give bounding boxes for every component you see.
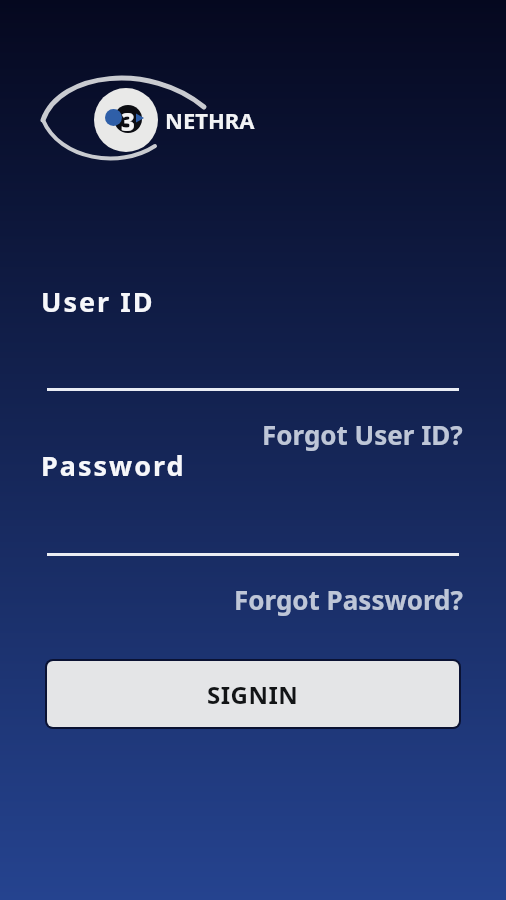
button[interactable]: Forgot User ID? [262,417,463,452]
button[interactable] [47,350,459,391]
staticText: SIGNIN [207,678,299,711]
button[interactable]: Forgot Password? [234,582,463,617]
staticText: NETHRA [165,105,255,135]
staticText: User ID [41,283,155,320]
staticText: 3 [121,105,135,138]
button[interactable] [47,515,459,556]
staticText: Password [41,447,186,484]
button[interactable]: SIGNIN [47,661,459,727]
